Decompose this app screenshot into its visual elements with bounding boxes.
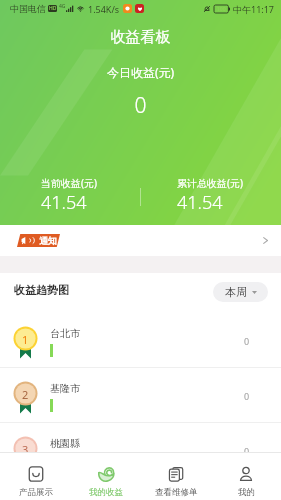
staticText: 1.54K/s [88, 3, 120, 15]
staticText: 收益趋势图 [14, 283, 69, 297]
staticText: 基隆市 [50, 382, 80, 395]
button[interactable]: 我的 [211, 453, 281, 500]
staticText: 1 [22, 332, 29, 347]
staticText: 当前收益(元) [41, 176, 97, 190]
staticText: HD [49, 5, 57, 12]
staticText: 今日收益(元) [0, 64, 281, 80]
staticText: 累计总收益(元) [177, 176, 243, 190]
staticText: 0 [244, 335, 250, 347]
staticText: 中午11:17 [233, 3, 275, 15]
staticText: 4G [59, 3, 66, 10]
staticText: 41.54 [177, 190, 223, 215]
button[interactable]: 通知 [0, 225, 281, 256]
staticText: 0 [244, 445, 250, 457]
staticText: 2 [22, 387, 29, 402]
staticText: 中国电信 [10, 3, 46, 14]
button[interactable]: 我的收益 [71, 453, 141, 500]
staticText: 3 [22, 442, 29, 457]
staticText: 通知 [39, 235, 57, 246]
staticText: 产品展示 [19, 487, 53, 498]
staticText: 台北市 [50, 327, 80, 340]
staticText: 41.54 [41, 190, 87, 215]
button[interactable]: 查看维修单 [141, 453, 211, 500]
button[interactable]: 本周 [213, 282, 268, 302]
button[interactable]: 2 [0, 368, 281, 422]
staticText: 收益看板 [0, 28, 281, 47]
button[interactable]: 1 [0, 313, 281, 367]
other: More notices [261, 236, 270, 245]
staticText: 0 [0, 91, 281, 120]
button[interactable]: 3 [0, 423, 281, 477]
staticText: 0 [244, 390, 250, 402]
staticText: 我的收益 [89, 487, 123, 498]
staticText: 本周 [225, 285, 247, 299]
staticText: 100 [217, 6, 226, 13]
staticText: 查看维修单 [155, 487, 198, 498]
staticText: 桃園縣 [50, 437, 80, 450]
button[interactable]: 产品展示 [0, 453, 71, 500]
staticText: 我的 [238, 487, 255, 498]
